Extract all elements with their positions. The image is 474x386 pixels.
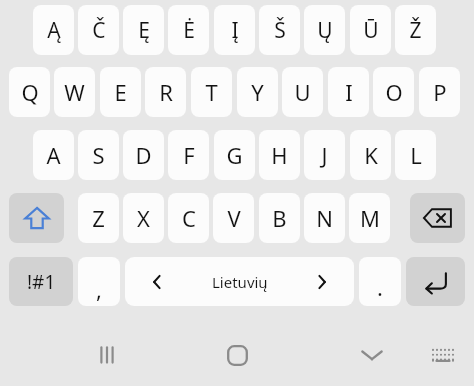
staticText: M bbox=[360, 203, 380, 233]
staticText: Ų bbox=[317, 16, 333, 45]
button[interactable]: !#1 bbox=[9, 257, 73, 306]
staticText: L bbox=[410, 140, 422, 170]
button[interactable]: A bbox=[33, 130, 74, 180]
staticText: Š bbox=[274, 16, 286, 45]
button[interactable]: N bbox=[304, 193, 345, 243]
staticText: H bbox=[271, 140, 288, 170]
button[interactable]: O bbox=[373, 67, 414, 117]
button[interactable]: Backspace bbox=[410, 193, 465, 243]
button[interactable]: M bbox=[349, 193, 390, 243]
staticText: Lietuvių bbox=[212, 272, 268, 292]
button[interactable]: P bbox=[419, 67, 460, 117]
button[interactable]: Ė bbox=[168, 5, 209, 55]
staticText: Q bbox=[21, 77, 39, 107]
button[interactable]: Į bbox=[214, 5, 255, 55]
staticText: Ę bbox=[138, 16, 150, 45]
staticText: D bbox=[135, 140, 152, 170]
staticText: U bbox=[294, 77, 311, 107]
button[interactable]: Y bbox=[237, 67, 278, 117]
button[interactable]: E bbox=[100, 67, 141, 117]
staticText: K bbox=[364, 140, 378, 170]
button[interactable]: L bbox=[395, 130, 436, 180]
staticText: Į bbox=[231, 16, 239, 45]
button[interactable]: R bbox=[145, 67, 186, 117]
staticText: G bbox=[226, 140, 243, 170]
button[interactable]: G bbox=[214, 130, 255, 180]
staticText: E bbox=[114, 77, 127, 107]
button[interactable]: Shift bbox=[9, 193, 64, 243]
staticText: B bbox=[272, 203, 287, 233]
button[interactable]: X bbox=[123, 193, 164, 243]
staticText: S bbox=[92, 140, 105, 170]
button[interactable]: K bbox=[350, 130, 391, 180]
staticText: . bbox=[377, 272, 383, 302]
staticText: Y bbox=[251, 77, 264, 107]
button[interactable]: Ū bbox=[350, 5, 391, 55]
staticText: C bbox=[182, 203, 196, 233]
button[interactable]: Č bbox=[78, 5, 119, 55]
button[interactable]: Space, Lietuvių bbox=[125, 257, 354, 306]
button[interactable]: Š bbox=[259, 5, 300, 55]
button[interactable]: Hide keyboard bbox=[348, 331, 396, 379]
staticText: X bbox=[137, 203, 150, 233]
staticText: I bbox=[345, 77, 353, 107]
staticText: Ū bbox=[363, 16, 379, 45]
button[interactable]: , bbox=[78, 257, 120, 306]
staticText: A bbox=[46, 140, 61, 170]
button[interactable]: Home bbox=[213, 331, 261, 379]
staticText: N bbox=[316, 203, 333, 233]
button[interactable]: Q bbox=[9, 67, 50, 117]
button[interactable]: Change keyboard bbox=[421, 333, 465, 377]
staticText: O bbox=[385, 77, 403, 107]
button[interactable]: V bbox=[213, 193, 254, 243]
staticText: R bbox=[159, 77, 173, 107]
staticText: !#1 bbox=[27, 269, 56, 295]
staticText: W bbox=[64, 77, 85, 107]
staticText: P bbox=[433, 77, 447, 107]
button[interactable]: T bbox=[191, 67, 232, 117]
button[interactable]: Ž bbox=[395, 5, 436, 55]
staticText: T bbox=[205, 77, 218, 107]
staticText: , bbox=[96, 274, 102, 304]
staticText: J bbox=[321, 140, 328, 170]
staticText: F bbox=[183, 140, 195, 170]
staticText: Ą bbox=[47, 16, 61, 45]
button[interactable]: C bbox=[168, 193, 209, 243]
button[interactable]: Recents bbox=[83, 331, 131, 379]
button[interactable]: I bbox=[328, 67, 369, 117]
staticText: Ė bbox=[183, 16, 195, 45]
button[interactable]: Ą bbox=[33, 5, 74, 55]
button[interactable]: Z bbox=[78, 193, 119, 243]
button[interactable]: W bbox=[54, 67, 95, 117]
button[interactable]: F bbox=[168, 130, 209, 180]
button[interactable]: S bbox=[78, 130, 119, 180]
staticText: Č bbox=[92, 16, 106, 45]
button[interactable]: Ų bbox=[304, 5, 345, 55]
staticText: Z bbox=[92, 203, 105, 233]
button[interactable]: D bbox=[123, 130, 164, 180]
button[interactable]: Enter bbox=[406, 257, 465, 306]
button[interactable]: . bbox=[359, 257, 401, 306]
staticText: V bbox=[227, 203, 241, 233]
button[interactable]: J bbox=[304, 130, 345, 180]
staticText: Ž bbox=[409, 16, 422, 45]
button[interactable]: U bbox=[282, 67, 323, 117]
button[interactable]: H bbox=[259, 130, 300, 180]
button[interactable]: B bbox=[259, 193, 300, 243]
button[interactable]: Ę bbox=[123, 5, 164, 55]
